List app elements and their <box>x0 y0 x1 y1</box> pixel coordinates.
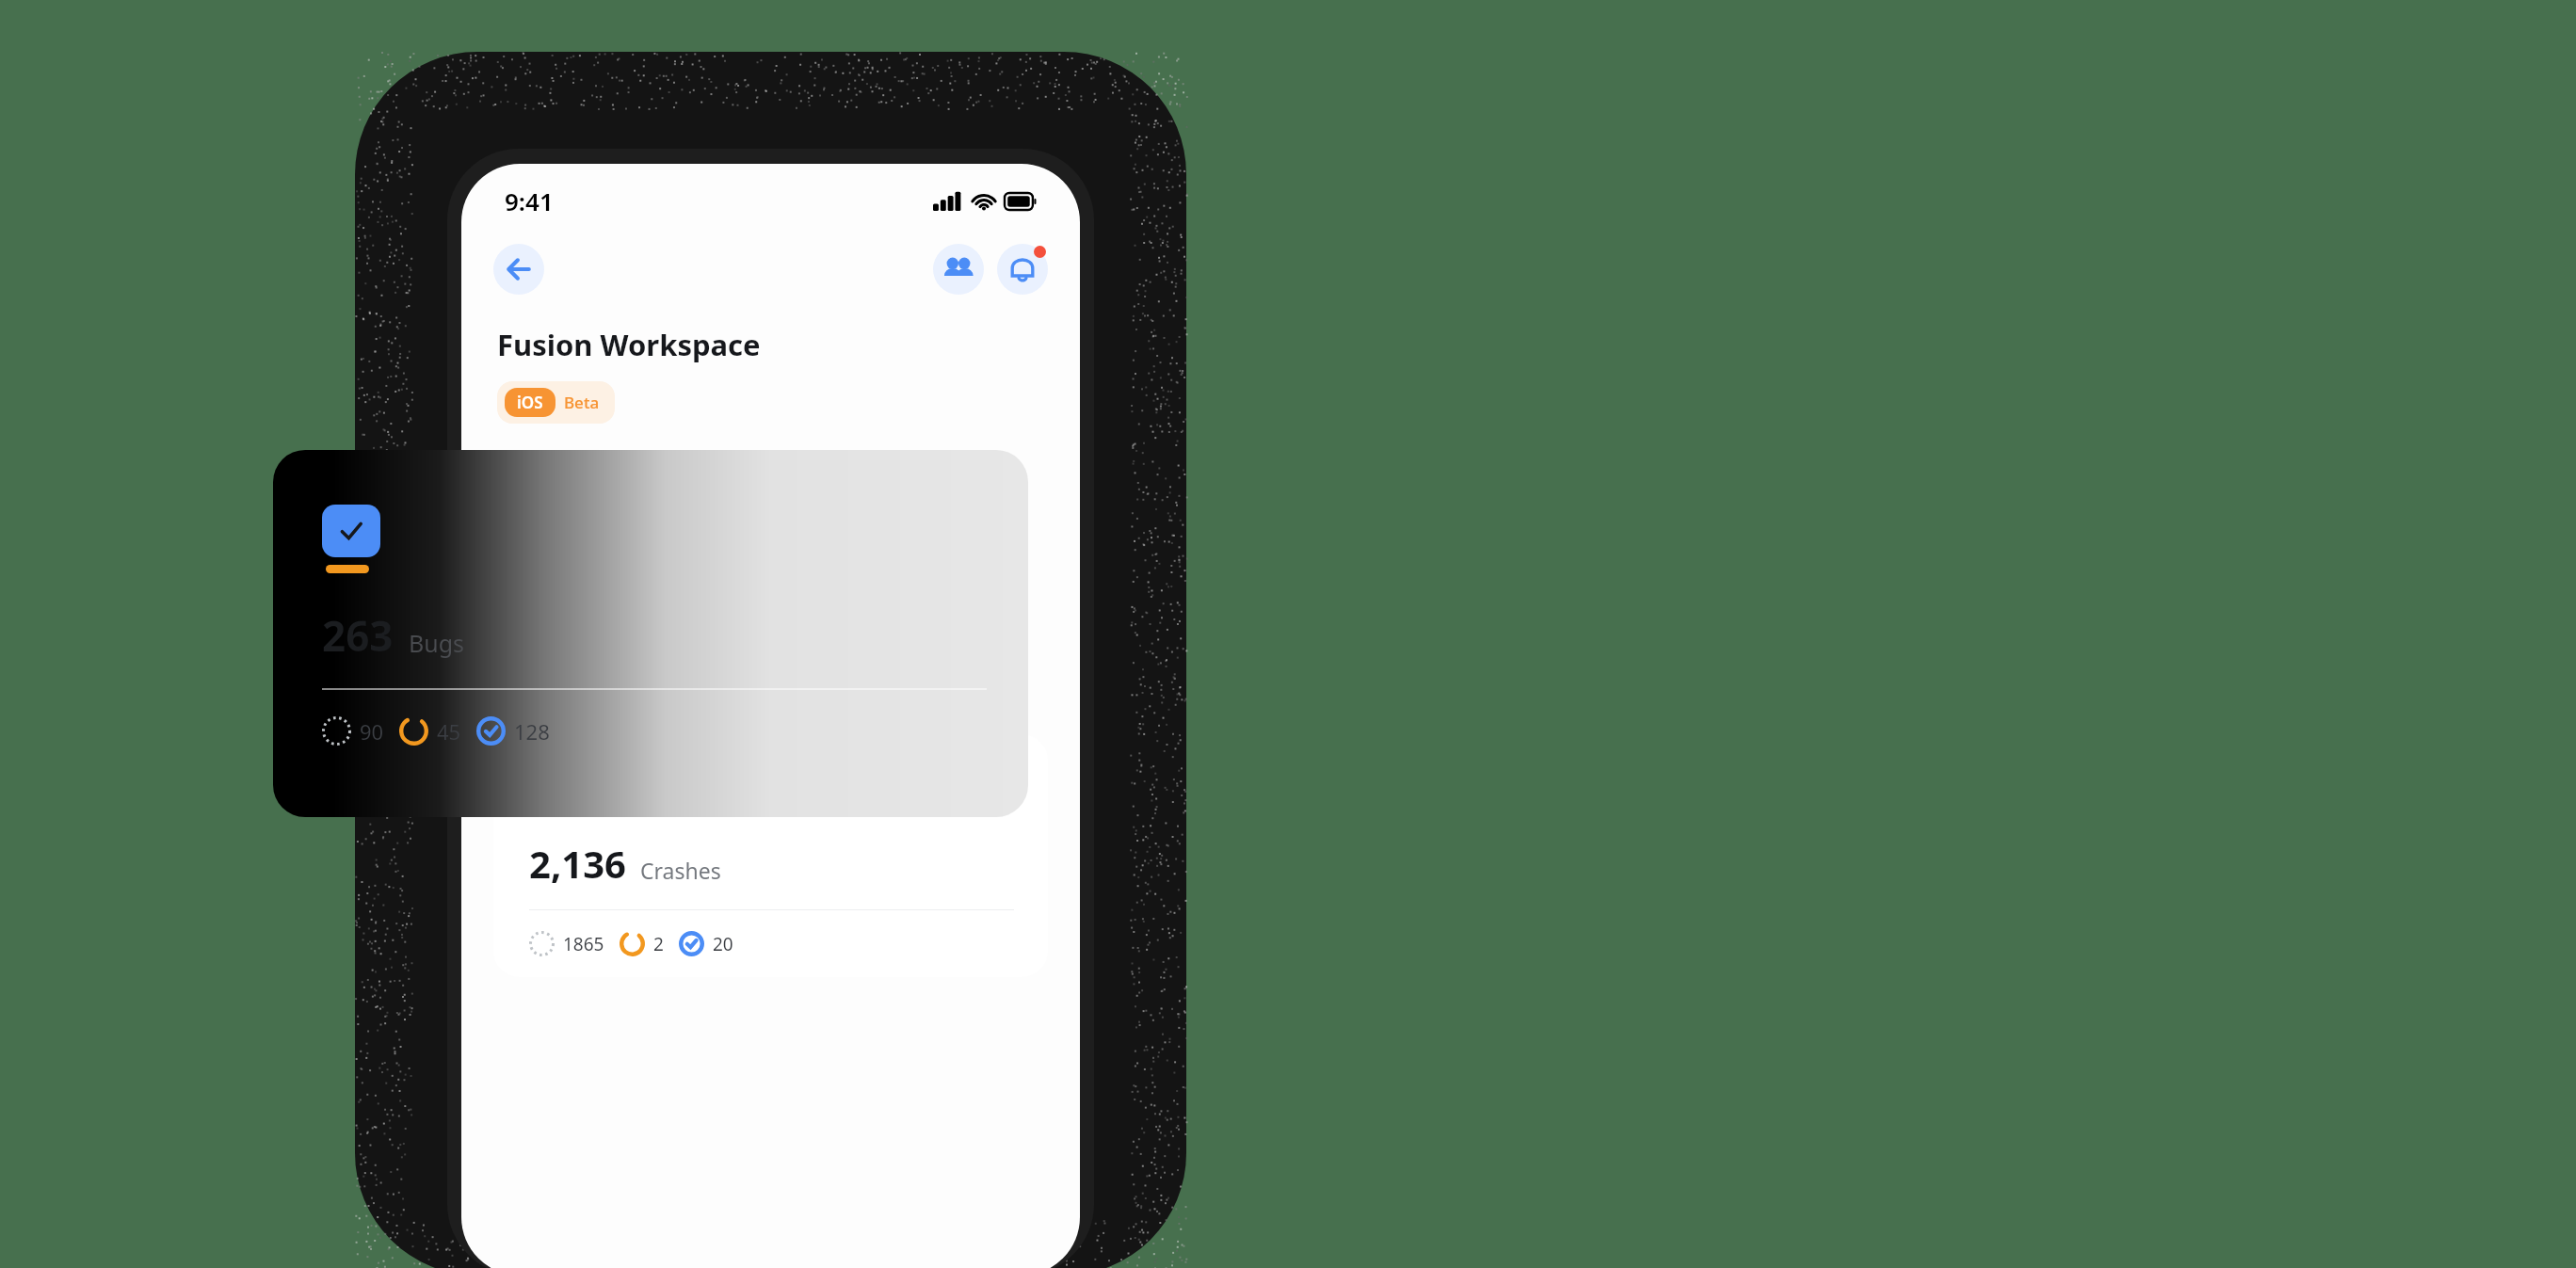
staticText: 9:41 <box>505 185 554 217</box>
button[interactable]: Back <box>493 244 544 295</box>
staticText: 1865 <box>563 932 604 956</box>
button[interactable]: Notifications <box>997 244 1048 295</box>
staticText: Crashes <box>640 856 721 885</box>
staticText: 263 <box>322 607 394 664</box>
staticText: Beta <box>564 392 600 413</box>
staticText: 90 <box>360 717 384 746</box>
staticText: Fusion Workspace <box>497 325 761 364</box>
staticText: 45 <box>437 717 461 746</box>
staticText: Bugs <box>409 627 465 659</box>
staticText: 128 <box>514 717 550 746</box>
staticText: 2 <box>653 932 664 956</box>
staticText: 2,136 <box>529 838 626 889</box>
button[interactable]: iOS <box>497 381 615 424</box>
button[interactable]: 2,136 <box>493 734 1048 977</box>
button[interactable]: Members <box>933 244 984 295</box>
staticText: iOS <box>517 392 543 413</box>
button[interactable]: 263 <box>273 450 1028 817</box>
staticText: 20 <box>713 932 733 956</box>
